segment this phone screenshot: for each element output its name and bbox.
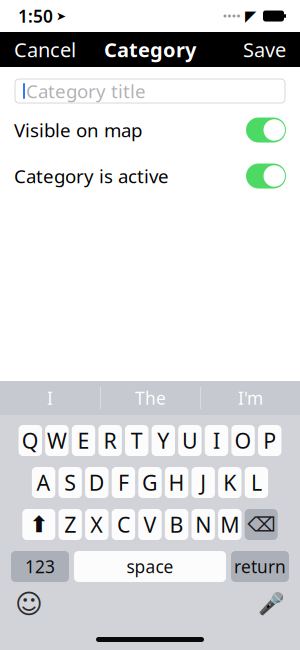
button[interactable]: K: [218, 467, 241, 498]
staticText: Category is active: [14, 164, 169, 188]
staticText: ⬆: [29, 512, 48, 537]
button[interactable]: S: [58, 467, 82, 498]
button[interactable]: X: [85, 509, 108, 540]
staticText: ☺: [15, 589, 43, 619]
staticText: S: [64, 468, 76, 497]
button[interactable]: Dictation: [254, 589, 288, 619]
button[interactable]: W: [45, 425, 69, 456]
staticText: ➤: [56, 9, 66, 23]
button[interactable]: G: [138, 467, 162, 498]
button[interactable]: P: [258, 425, 281, 456]
staticText: A: [37, 468, 51, 497]
staticText: Category title: [26, 79, 146, 103]
button[interactable]: L: [245, 467, 268, 498]
staticText: K: [223, 468, 236, 497]
staticText: Cancel: [14, 36, 76, 63]
staticText: V: [143, 510, 156, 539]
staticText: ◤: [245, 8, 256, 24]
staticText: Y: [157, 426, 169, 455]
staticText: R: [104, 426, 117, 455]
staticText: E: [77, 426, 89, 455]
staticText: C: [117, 510, 130, 539]
staticText: U: [182, 426, 198, 455]
button[interactable]: B: [165, 509, 188, 540]
button[interactable]: D: [85, 467, 108, 498]
staticText: I: [213, 426, 220, 455]
button[interactable]: Shift: [22, 509, 55, 540]
staticText: J: [200, 468, 206, 497]
button[interactable]: Cancel: [0, 32, 90, 67]
button[interactable]: Q: [19, 425, 42, 456]
staticText: 123: [25, 555, 55, 578]
staticText: 1:50: [18, 4, 53, 27]
button[interactable]: I'm: [201, 381, 300, 415]
staticText: M: [220, 510, 239, 539]
button[interactable]: Y: [152, 425, 175, 456]
button[interactable]: Emoji: [12, 589, 46, 619]
staticText: O: [235, 426, 252, 455]
button[interactable]: J: [191, 467, 215, 498]
button[interactable]: E: [72, 425, 95, 456]
staticText: B: [170, 510, 184, 539]
staticText: Save: [243, 36, 286, 63]
staticText: 🎤: [257, 592, 284, 616]
button[interactable]: 123: [11, 551, 69, 582]
button[interactable]: I: [205, 425, 228, 456]
staticText: I: [47, 386, 53, 409]
staticText: ⌫: [247, 513, 275, 536]
staticText: D: [89, 468, 105, 497]
button[interactable]: The: [101, 381, 200, 415]
button[interactable]: return: [231, 551, 289, 582]
staticText: I'm: [238, 386, 263, 409]
button[interactable]: V: [138, 509, 162, 540]
staticText: T: [131, 426, 143, 455]
button[interactable]: F: [112, 467, 135, 498]
button[interactable]: Save: [229, 32, 300, 67]
staticText: Z: [64, 510, 76, 539]
staticText: return: [234, 555, 286, 578]
staticText: Category: [104, 36, 196, 63]
staticText: H: [169, 468, 185, 497]
button[interactable]: R: [98, 425, 122, 456]
button[interactable]: M: [218, 509, 241, 540]
staticText: P: [263, 426, 276, 455]
staticText: N: [195, 510, 211, 539]
button[interactable]: O: [231, 425, 255, 456]
button[interactable]: H: [165, 467, 188, 498]
staticText: Q: [22, 426, 39, 455]
button[interactable]: Delete: [245, 509, 278, 540]
staticText: L: [251, 468, 262, 497]
button[interactable]: space: [74, 551, 226, 582]
staticText: G: [142, 468, 158, 497]
button[interactable]: U: [178, 425, 202, 456]
button[interactable]: C: [112, 509, 135, 540]
button[interactable]: N: [191, 509, 215, 540]
button[interactable]: T: [125, 425, 148, 456]
staticText: W: [47, 426, 67, 455]
staticText: F: [118, 468, 129, 497]
button[interactable]: I: [0, 381, 100, 415]
staticText: X: [90, 510, 103, 539]
staticText: The: [135, 386, 166, 409]
staticText: space: [126, 555, 173, 578]
button[interactable]: Visible on map: [0, 113, 300, 147]
staticText: Visible on map: [14, 118, 142, 142]
button[interactable]: A: [32, 467, 55, 498]
button[interactable]: Z: [58, 509, 82, 540]
button[interactable]: Category is active: [0, 159, 300, 193]
